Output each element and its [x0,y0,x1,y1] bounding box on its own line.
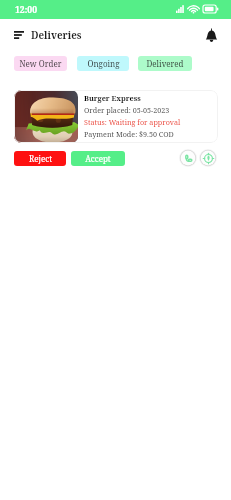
staticText: Ongoing [87,58,120,69]
button[interactable]: New Order [14,56,67,71]
button[interactable]: Track location [199,149,217,167]
staticText: Reject [29,153,52,164]
staticText: 12:00 [15,4,38,16]
staticText: Delivered [146,58,184,69]
staticText: Burger Express [84,93,141,103]
button[interactable]: Menu [14,26,24,44]
staticText: Accept [85,153,111,164]
staticText: Payment Mode: $9.50 COD [84,129,174,139]
button[interactable]: Burger Express [14,90,218,143]
button[interactable]: Accept [71,151,125,166]
staticText: New Order [19,58,62,69]
button[interactable]: Call restaurant [179,149,197,167]
staticText: Status: Waiting for approval [84,117,181,127]
button[interactable]: Notifications [202,26,220,44]
button[interactable]: Reject [14,151,66,166]
staticText: Deliveries [31,29,82,42]
button[interactable]: Ongoing [77,56,129,71]
staticText: Order placed: 05-05-2023 [84,105,170,115]
button[interactable]: Delivered [138,56,192,71]
